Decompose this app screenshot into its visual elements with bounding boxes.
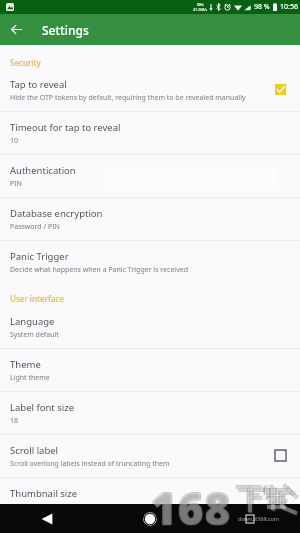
button[interactable]: Thumbnail size	[0, 478, 300, 504]
button[interactable]: Toggle setting	[275, 450, 286, 461]
button[interactable]: Authentication	[0, 155, 300, 197]
staticText: 88/s	[197, 2, 204, 7]
staticText: Theme	[10, 358, 41, 371]
button[interactable]: Tap to reveal	[0, 69, 300, 111]
staticText: 168	[150, 479, 231, 533]
button[interactable]: Recent apps	[200, 504, 300, 533]
staticText: Label font size	[10, 401, 75, 414]
button[interactable]: Theme	[0, 349, 300, 391]
button[interactable]: Navigate up	[0, 14, 33, 45]
staticText: 168	[152, 477, 233, 533]
button[interactable]: Panic Trigger	[0, 241, 300, 283]
staticText: Password / PIN	[10, 222, 60, 232]
staticText: Authentication	[10, 164, 76, 177]
staticText: Panic Trigger	[10, 250, 69, 263]
staticText: Security	[10, 57, 41, 68]
staticText: Scroll overlong labels instead of trunca…	[10, 459, 170, 469]
staticText: 10:56	[280, 2, 298, 12]
staticText: Hide the OTP tokens by default, requirin…	[10, 93, 246, 103]
button[interactable]: Back	[0, 504, 100, 533]
staticText: 98 %	[254, 2, 270, 12]
staticText: Database encryption	[10, 207, 103, 220]
button[interactable]: Scroll label	[0, 435, 300, 477]
staticText: Light theme	[10, 373, 50, 383]
staticText: Language	[10, 315, 55, 328]
button[interactable]: Timeout for tap to reveal	[0, 112, 300, 154]
staticText: 10	[10, 136, 19, 146]
staticText: 168	[151, 478, 232, 533]
staticText: Thumbnail size	[10, 487, 78, 500]
staticText: down.it168.com	[238, 515, 280, 522]
staticText: Timeout for tap to reveal	[10, 121, 121, 134]
staticText: 18	[10, 416, 19, 426]
button[interactable]: Label font size	[0, 392, 300, 434]
staticText: Scroll label	[10, 444, 59, 457]
button[interactable]: Database encryption	[0, 198, 300, 240]
staticText: User interface	[10, 293, 65, 304]
staticText: 168	[150, 477, 231, 533]
button[interactable]: Language	[0, 306, 300, 348]
button[interactable]: Home	[100, 504, 200, 533]
staticText: System default	[10, 330, 59, 340]
staticText: Settings	[42, 22, 89, 38]
staticText: 41.36B/s	[193, 7, 208, 12]
staticText: Tap to reveal	[10, 78, 67, 91]
staticText: 168	[152, 479, 233, 533]
staticText: Decide what happens when a Panic Trigger…	[10, 265, 188, 275]
staticText: PIN	[10, 179, 22, 189]
button[interactable]: Toggle setting	[275, 84, 286, 95]
